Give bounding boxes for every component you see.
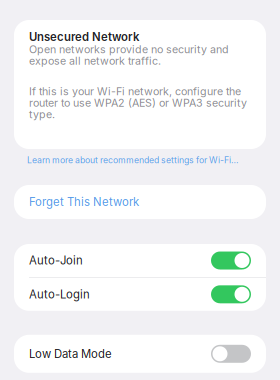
staticText: Auto-Join <box>29 254 83 267</box>
staticText: Learn more about recommended settings fo… <box>27 155 238 165</box>
button[interactable]: Auto-Login <box>14 278 266 311</box>
staticText: Forget This Network <box>29 195 139 209</box>
staticText: Open networks provide no security and ex… <box>29 43 229 67</box>
staticText: Unsecured Network <box>29 30 139 44</box>
staticText: If this is your Wi-Fi network, configure… <box>29 85 247 121</box>
staticText: Low Data Mode <box>29 347 112 361</box>
button[interactable]: Forget This Network <box>14 185 266 219</box>
button[interactable]: Auto-Join <box>14 244 266 277</box>
staticText: Auto-Login <box>29 287 90 301</box>
button[interactable]: Learn more about recommended settings fo… <box>14 154 266 166</box>
button[interactable]: Low Data Mode <box>14 337 266 370</box>
